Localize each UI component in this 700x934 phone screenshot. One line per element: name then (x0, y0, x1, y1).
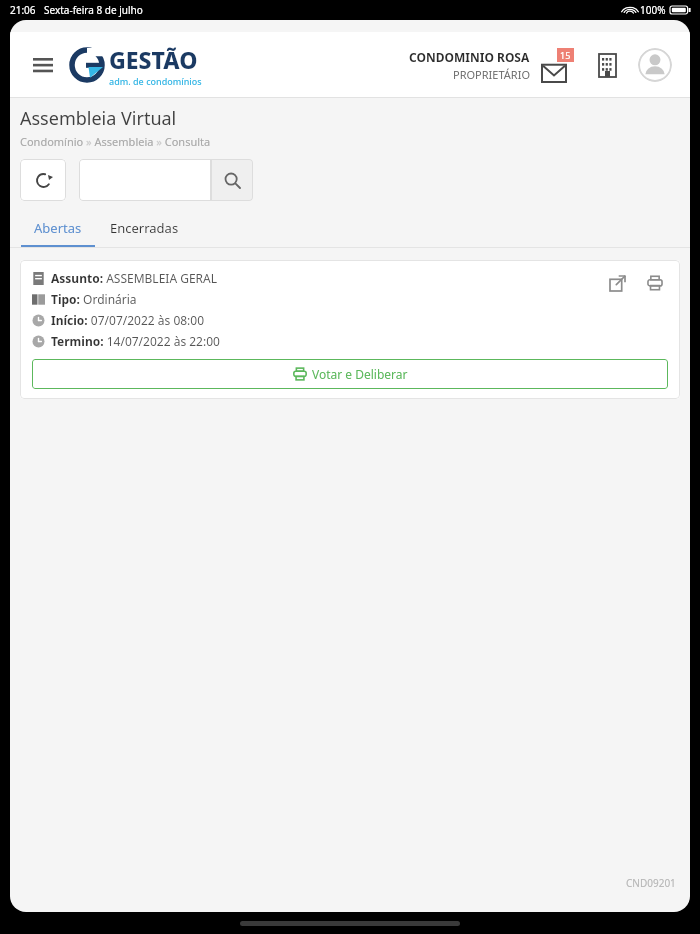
button[interactable]: Encerradas (96, 211, 193, 245)
staticText: GESTÃO (109, 44, 198, 75)
staticText: Assembleia Virtual (20, 106, 177, 131)
button[interactable]: Atualizar (20, 159, 66, 201)
button[interactable]: Imprimir (642, 270, 668, 296)
staticText: Encerradas (110, 219, 179, 237)
staticText: 100% (640, 3, 666, 17)
button[interactable]: Condomínio (590, 48, 624, 82)
staticText: Condomínio » Assembleia » Consulta (20, 134, 211, 149)
staticText: 15 (560, 49, 571, 61)
staticText: CONDOMINIO ROSA (409, 49, 530, 65)
button[interactable]: Abertas (20, 211, 96, 247)
button[interactable] (79, 159, 211, 201)
staticText: Sexta-feira 8 de julho (44, 3, 143, 17)
staticText: Assunto: ASSEMBLEIA GERAL (51, 270, 217, 286)
button[interactable]: Abrir (604, 270, 630, 296)
staticText: 21:06 (10, 3, 36, 17)
button[interactable]: Mensagens (542, 48, 576, 82)
staticText: CND09201 (626, 876, 676, 890)
staticText: Início: 07/07/2022 às 08:00 (51, 312, 205, 328)
staticText: Termino: 14/07/2022 às 22:00 (51, 333, 220, 349)
button[interactable]: Pesquisar (211, 159, 253, 201)
staticText: Abertas (34, 219, 82, 237)
staticText: Votar e Deliberar (312, 366, 408, 382)
button[interactable]: Menu (28, 50, 58, 80)
staticText: adm. de condomínios (109, 75, 202, 87)
staticText: PROPRIETÁRIO (453, 67, 530, 82)
button[interactable]: Votar e Deliberar (32, 359, 668, 389)
staticText: Tipo: Ordinária (51, 291, 137, 307)
button[interactable]: Perfil (638, 48, 672, 82)
